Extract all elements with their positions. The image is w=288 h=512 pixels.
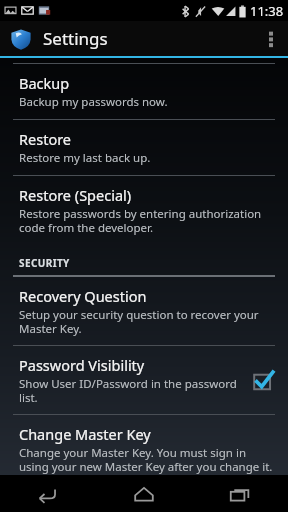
staticText: Show User ID/Password in the password li… [19, 376, 242, 405]
staticText: Backup my passwords now. [19, 94, 168, 110]
staticText: 11:38 [250, 2, 284, 20]
button[interactable]: Restore (Special) [0, 176, 288, 244]
staticText: Restore [19, 129, 72, 149]
staticText: Settings [43, 27, 108, 50]
button[interactable]: Recovery Question [0, 277, 288, 345]
staticText: Change Master Key [19, 424, 151, 444]
staticText: Setup your security question to recover … [19, 307, 276, 336]
staticText: Recovery Question [19, 286, 147, 306]
staticText: SECURITY [19, 256, 70, 270]
button[interactable]: Password Visibility toggle [250, 367, 276, 393]
button[interactable]: Back [0, 475, 96, 512]
button[interactable]: Recent apps [192, 475, 288, 512]
other: App icon [9, 27, 33, 51]
button[interactable]: More options [254, 21, 288, 56]
staticText: Password Visibility [19, 355, 145, 375]
button[interactable]: Backup [0, 64, 288, 119]
staticText: Restore my last back up. [19, 150, 151, 166]
staticText: Backup [19, 73, 70, 93]
button[interactable]: Home [96, 475, 192, 512]
button[interactable]: Change Master Key [0, 415, 288, 483]
button[interactable]: Restore [0, 120, 288, 175]
staticText: Restore passwords by entering authorizat… [19, 206, 276, 235]
staticText: Change your Master Key. You must sign in… [19, 445, 276, 474]
button[interactable]: Password Visibility [0, 346, 288, 414]
staticText: Restore (Special) [19, 185, 132, 205]
